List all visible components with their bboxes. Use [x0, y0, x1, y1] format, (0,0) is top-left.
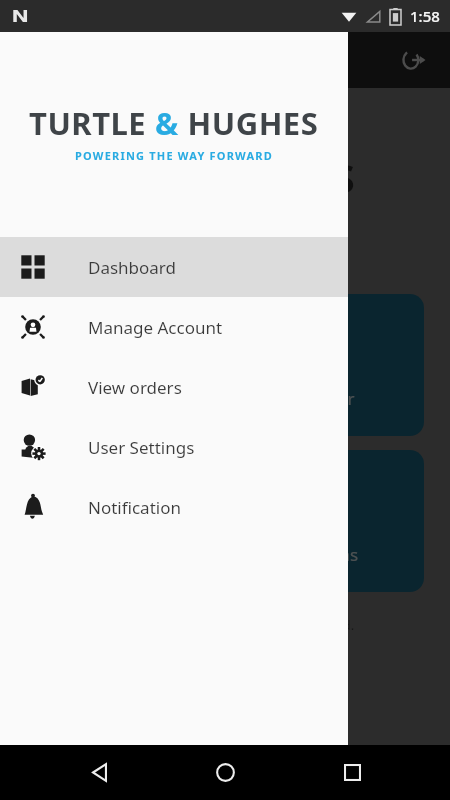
staticText: HUGHES — [190, 150, 355, 204]
staticText: Manage Account — [88, 316, 223, 339]
button[interactable]: Home — [197, 745, 253, 800]
button[interactable]: Notification — [0, 477, 348, 537]
staticText: View orders — [88, 376, 182, 399]
staticText: Notifications — [257, 543, 359, 566]
staticText: User Settings — [88, 436, 195, 459]
staticText: HUGHES — [179, 102, 319, 144]
button[interactable]: Place Order — [192, 294, 424, 436]
button[interactable]: Notifications — [192, 450, 424, 592]
staticText: All rights reserved. — [240, 616, 355, 634]
button[interactable]: Manage Account — [0, 297, 348, 357]
staticText: Notification — [88, 496, 181, 519]
staticText: TURTLE — [29, 102, 155, 144]
staticText: POWERING THE WAY FORWARD — [75, 148, 273, 163]
staticText: & — [155, 102, 179, 144]
staticText: Place Order — [261, 387, 355, 410]
staticText: Dashboard — [88, 256, 177, 279]
button[interactable]: Recent apps — [324, 745, 380, 800]
button[interactable]: Back — [71, 745, 127, 800]
button[interactable]: Dashboard — [0, 237, 348, 297]
button[interactable]: View orders — [0, 357, 348, 417]
staticText: 1:58 — [410, 6, 440, 26]
button[interactable]: Logout — [392, 38, 436, 82]
button[interactable]: User Settings — [0, 417, 348, 477]
